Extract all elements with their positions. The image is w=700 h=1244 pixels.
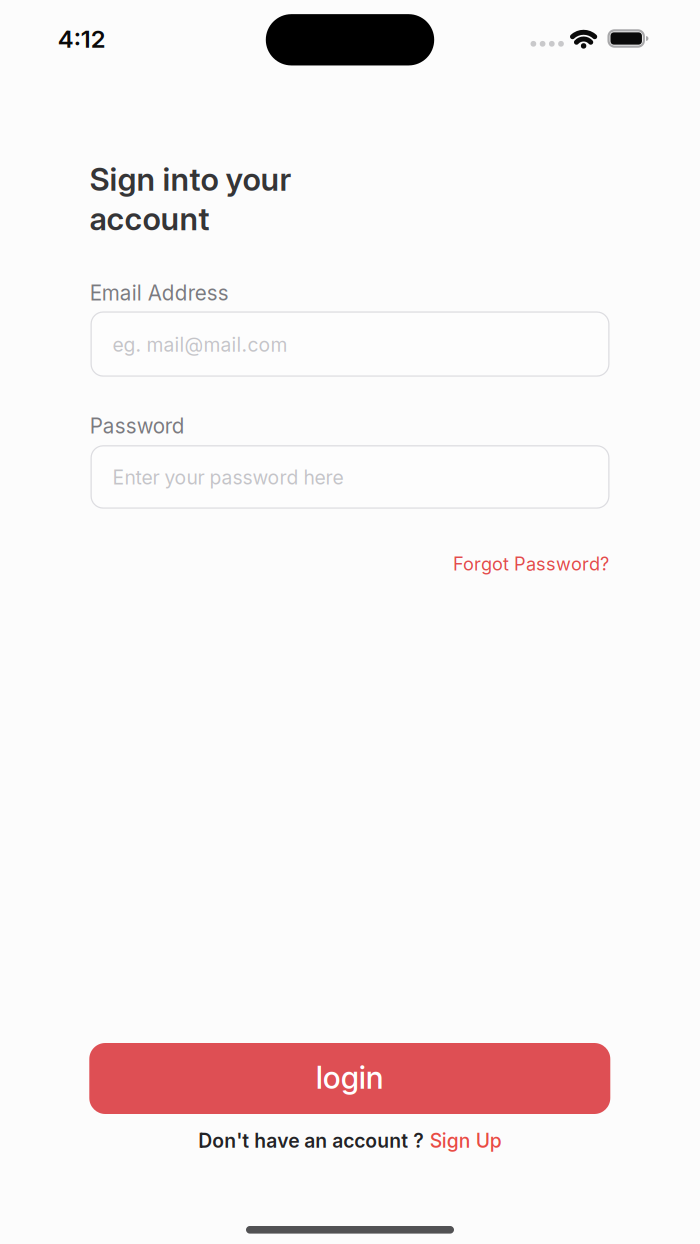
staticText: Enter your password here xyxy=(112,466,343,489)
button[interactable]: Sign Up xyxy=(430,1129,502,1152)
staticText: Password xyxy=(90,413,185,438)
staticText: login xyxy=(316,1059,384,1096)
staticText: 4:12 xyxy=(58,24,106,53)
button[interactable]: eg. mail@mail.com xyxy=(90,311,609,377)
button[interactable]: Enter your password here xyxy=(90,445,609,509)
button[interactable]: login xyxy=(89,1043,610,1114)
button[interactable]: Forgot Password? xyxy=(453,553,609,575)
staticText: Forgot Password? xyxy=(453,553,609,575)
staticText: Don't have an account ? xyxy=(198,1129,424,1152)
staticText: Sign into your xyxy=(89,160,291,198)
staticText: Email Address xyxy=(90,280,229,305)
staticText: Sign Up xyxy=(430,1129,502,1152)
staticText: eg. mail@mail.com xyxy=(112,333,287,356)
staticText: account xyxy=(89,200,209,238)
